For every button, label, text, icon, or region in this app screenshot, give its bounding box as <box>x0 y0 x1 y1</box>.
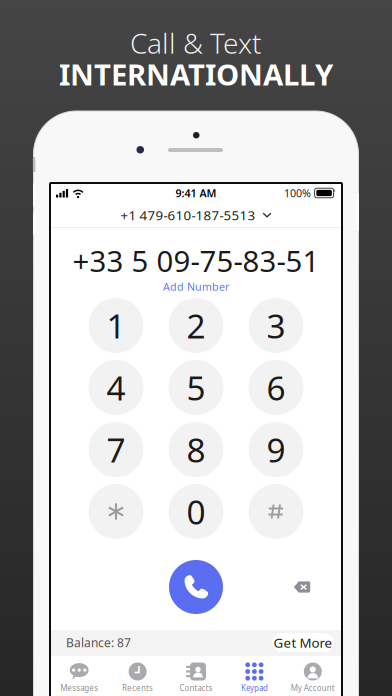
staticText: Balance: 87 <box>66 634 131 650</box>
button[interactable]: Contacts <box>167 655 225 695</box>
staticText: 9 <box>266 427 285 472</box>
staticText: 9:41 AM <box>175 186 216 200</box>
button[interactable]: 3 <box>248 298 303 353</box>
staticText: My Account <box>291 683 335 693</box>
staticText: 7 <box>106 427 125 472</box>
staticText: Add Number <box>163 279 229 294</box>
button[interactable]: 9 <box>248 422 303 477</box>
button[interactable]: My Account <box>284 655 342 695</box>
button[interactable]: Messages <box>50 655 108 695</box>
staticText: +33 5 09-75-83-51 <box>72 241 319 280</box>
button[interactable]: 0 <box>168 484 223 539</box>
staticText: 8 <box>186 427 205 472</box>
staticText: +1 479-610-187-5513 <box>120 206 255 224</box>
staticText: 2 <box>186 303 205 348</box>
button[interactable]: Recents <box>108 655 167 695</box>
button[interactable]: 6 <box>248 360 303 415</box>
staticText: Keypad <box>241 683 268 693</box>
button[interactable]: 4 <box>88 360 143 415</box>
staticText: 4 <box>106 365 125 410</box>
staticText: 5 <box>186 365 205 410</box>
staticText: INTERNATIONALLY <box>59 54 333 93</box>
staticText: Recents <box>122 683 153 693</box>
staticText: Contacts <box>179 683 212 693</box>
button[interactable]: Call <box>169 560 223 614</box>
staticText: 6 <box>266 365 285 410</box>
button[interactable]: 1 <box>88 298 143 353</box>
button[interactable]: Get More <box>272 633 334 652</box>
staticText: Get More <box>273 634 332 651</box>
staticText: 0 <box>186 489 205 534</box>
button[interactable]: Keypad <box>225 655 284 695</box>
staticText: Call & Text <box>130 24 262 62</box>
button[interactable] <box>88 484 143 539</box>
button[interactable]: 8 <box>168 422 223 477</box>
staticText: 3 <box>266 303 285 348</box>
button[interactable]: 2 <box>168 298 223 353</box>
staticText: 100% <box>284 186 311 200</box>
button[interactable]: +1 479-610-187-5513 <box>50 203 342 227</box>
button[interactable]: 5 <box>168 360 223 415</box>
button[interactable]: Add Number <box>163 280 229 294</box>
button[interactable]: Delete <box>280 567 324 607</box>
staticText: Messages <box>60 683 98 693</box>
button[interactable]: 7 <box>88 422 143 477</box>
staticText: 1 <box>106 303 125 348</box>
button[interactable] <box>248 484 303 539</box>
